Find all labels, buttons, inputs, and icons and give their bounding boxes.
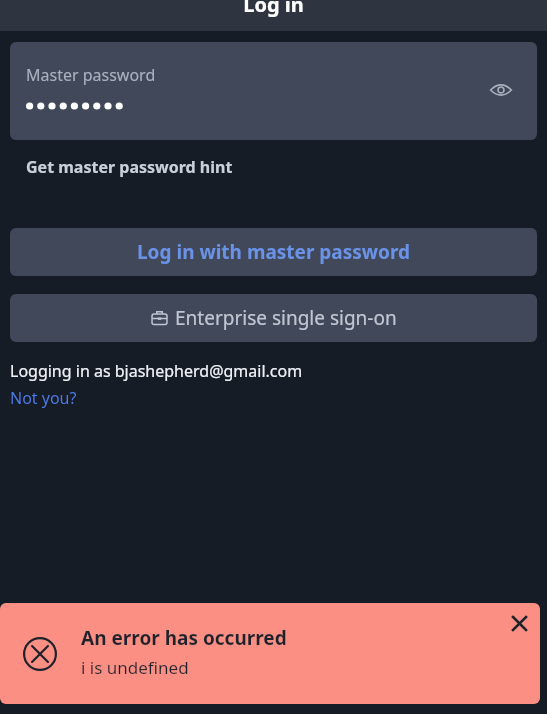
button[interactable]: Close: [505, 609, 533, 637]
button[interactable]: Enterprise single sign-on: [10, 294, 537, 342]
button[interactable]: An error has occurred: [0, 603, 540, 704]
staticText: i is undefined: [81, 656, 189, 679]
staticText: Master password: [26, 64, 156, 86]
staticText: Log in with master password: [137, 239, 411, 265]
button[interactable]: Toggle password visibility: [480, 69, 522, 111]
staticText: Log in: [243, 0, 304, 18]
staticText: An error has occurred: [81, 625, 287, 651]
button[interactable]: Not you?: [10, 386, 77, 410]
staticText: Get master password hint: [26, 156, 233, 178]
button[interactable]: Log in with master password: [10, 228, 537, 276]
button[interactable]: Get master password hint: [10, 154, 233, 180]
staticText: Enterprise single sign-on: [175, 305, 397, 331]
staticText: Logging in as bjashepherd@gmail.com: [10, 360, 303, 382]
staticText: Not you?: [10, 387, 77, 409]
button[interactable]: Master password: [10, 42, 537, 140]
